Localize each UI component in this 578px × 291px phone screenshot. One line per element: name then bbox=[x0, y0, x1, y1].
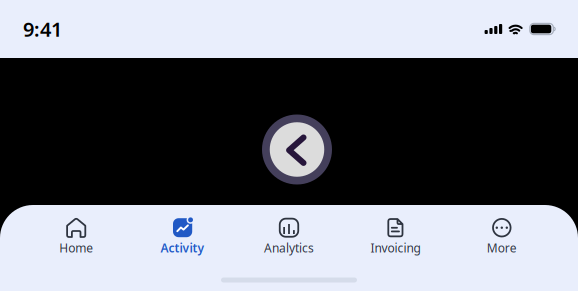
staticText: Analytics bbox=[264, 240, 314, 256]
button[interactable]: Back bbox=[262, 114, 332, 184]
staticText: More bbox=[487, 240, 517, 256]
button[interactable]: Home bbox=[23, 217, 129, 256]
button[interactable]: Analytics bbox=[236, 217, 342, 256]
staticText: Activity bbox=[161, 240, 205, 256]
staticText: 9:41 bbox=[23, 16, 62, 42]
staticText: Home bbox=[59, 240, 93, 256]
staticText: Invoicing bbox=[370, 240, 420, 256]
button[interactable]: Activity bbox=[129, 217, 236, 256]
button[interactable]: Invoicing bbox=[342, 217, 449, 256]
button[interactable]: More bbox=[449, 217, 555, 256]
